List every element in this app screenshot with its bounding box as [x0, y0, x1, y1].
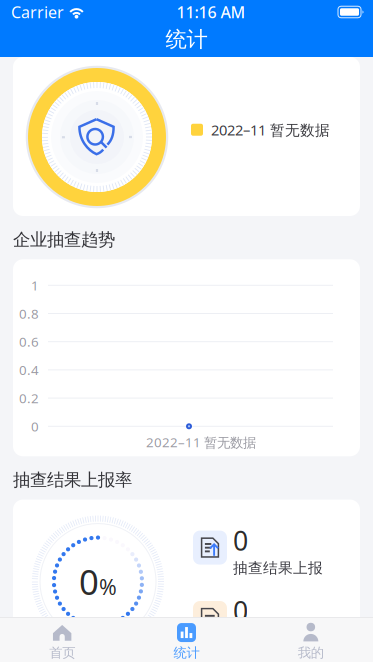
staticText: 0 — [31, 417, 39, 435]
staticText: 0 — [233, 593, 248, 628]
staticText: 0.4 — [19, 361, 39, 379]
button[interactable]: 首页 — [0, 617, 124, 662]
staticText: % — [99, 573, 117, 601]
staticText: 首页 — [49, 645, 75, 661]
staticText: 抽查结果上报率 — [13, 469, 132, 491]
staticText: 我的 — [298, 645, 324, 661]
staticText: 0 — [79, 559, 99, 605]
staticText: 统计 — [165, 26, 207, 53]
staticText: 0.2 — [19, 389, 39, 407]
staticText: Carrier — [11, 1, 64, 23]
button[interactable]: 统计 — [124, 617, 249, 662]
staticText: 0 — [233, 523, 248, 558]
staticText: 2022–11 暂无数据 — [211, 120, 330, 139]
staticText: 0.6 — [19, 333, 39, 350]
staticText: 统计 — [173, 645, 199, 661]
staticText: 抽查结果上报 — [233, 559, 323, 577]
staticText: 2022–11 暂无数据 — [146, 433, 256, 451]
staticText: 0.8 — [19, 305, 39, 322]
staticText: 企业抽查趋势 — [13, 229, 115, 250]
button[interactable]: 我的 — [249, 617, 373, 662]
staticText: 11:16 AM — [176, 1, 245, 23]
staticText: 1 — [31, 276, 39, 294]
